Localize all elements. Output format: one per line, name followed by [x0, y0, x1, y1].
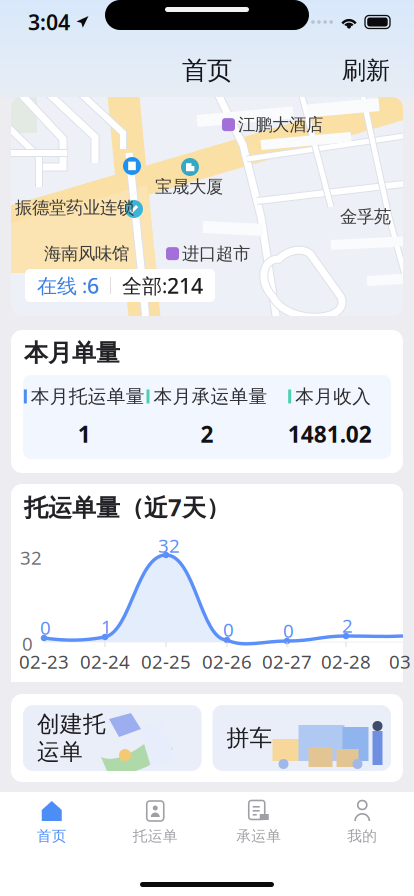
staticText: 本月承运单量	[153, 385, 267, 408]
staticText: 本月单量	[24, 338, 120, 368]
staticText: 江鹏大酒店	[238, 114, 323, 135]
button[interactable]: 创建托 运单	[23, 705, 201, 771]
staticText: 03	[389, 649, 411, 674]
button[interactable]: 刷新	[332, 48, 400, 93]
staticText: 我的	[347, 827, 377, 845]
staticText: 0	[283, 618, 294, 643]
staticText: 首页	[37, 827, 67, 845]
staticText: 02-26	[202, 649, 252, 674]
staticText: 本月收入	[295, 385, 371, 408]
staticText: 02-27	[262, 649, 312, 674]
staticText: 振德堂药业连锁	[15, 197, 134, 218]
staticText: 02-23	[19, 649, 69, 674]
staticText: 0	[223, 617, 234, 642]
button[interactable]: 托运单	[103, 796, 207, 848]
staticText: 02-28	[321, 649, 371, 674]
staticText: 刷新	[342, 56, 390, 85]
staticText: 承运单	[236, 827, 281, 845]
button[interactable]: 拼车	[212, 705, 391, 771]
staticText: 02-25	[141, 649, 191, 674]
staticText: 托运单	[133, 827, 178, 845]
staticText: 进口超市	[182, 243, 250, 264]
button[interactable]: 我的	[310, 796, 414, 848]
staticText: 海南风味馆	[44, 243, 129, 264]
staticText: 金孚苑	[340, 206, 391, 227]
staticText: 32	[20, 545, 42, 570]
staticText: 首页	[182, 55, 232, 86]
staticText: 1	[101, 614, 112, 639]
staticText: 拼车	[226, 724, 272, 752]
staticText: 6	[87, 271, 99, 300]
staticText: 全部:	[122, 272, 167, 299]
staticText: 本月托运单量	[31, 385, 145, 408]
staticText: 02-24	[80, 649, 130, 674]
staticText: 214	[167, 271, 203, 300]
staticText: 0	[22, 631, 33, 656]
staticText: 1481.02	[288, 419, 372, 449]
staticText: 2	[200, 419, 213, 449]
staticText: 32	[158, 533, 180, 558]
staticText: 创建托 运单	[37, 710, 106, 766]
button[interactable]: 承运单	[207, 796, 310, 848]
staticText: 3:04	[28, 8, 70, 36]
button[interactable]: 首页	[0, 796, 103, 848]
staticText: 0	[40, 615, 51, 640]
staticText: 宝晟大厦	[155, 176, 223, 197]
staticText: 托运单量（近7天）	[24, 491, 230, 523]
staticText: 在线 :	[37, 272, 87, 299]
staticText: 1	[78, 419, 91, 449]
staticText: 2	[342, 613, 353, 638]
